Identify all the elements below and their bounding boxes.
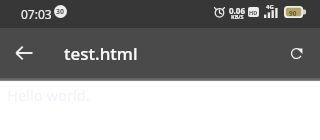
staticText: KB/S: [231, 13, 244, 20]
staticText: 4G: [266, 3, 274, 11]
button[interactable]: Back: [8, 37, 40, 69]
staticText: 0.06: [229, 5, 245, 16]
button[interactable]: Refresh: [280, 37, 312, 69]
staticText: 30: [56, 7, 65, 17]
staticText: Hello world.: [7, 85, 90, 105]
staticText: test.html: [64, 42, 138, 65]
staticText: 07:03: [21, 6, 52, 22]
staticText: 90: [289, 9, 297, 18]
staticText: HD: [249, 9, 258, 16]
